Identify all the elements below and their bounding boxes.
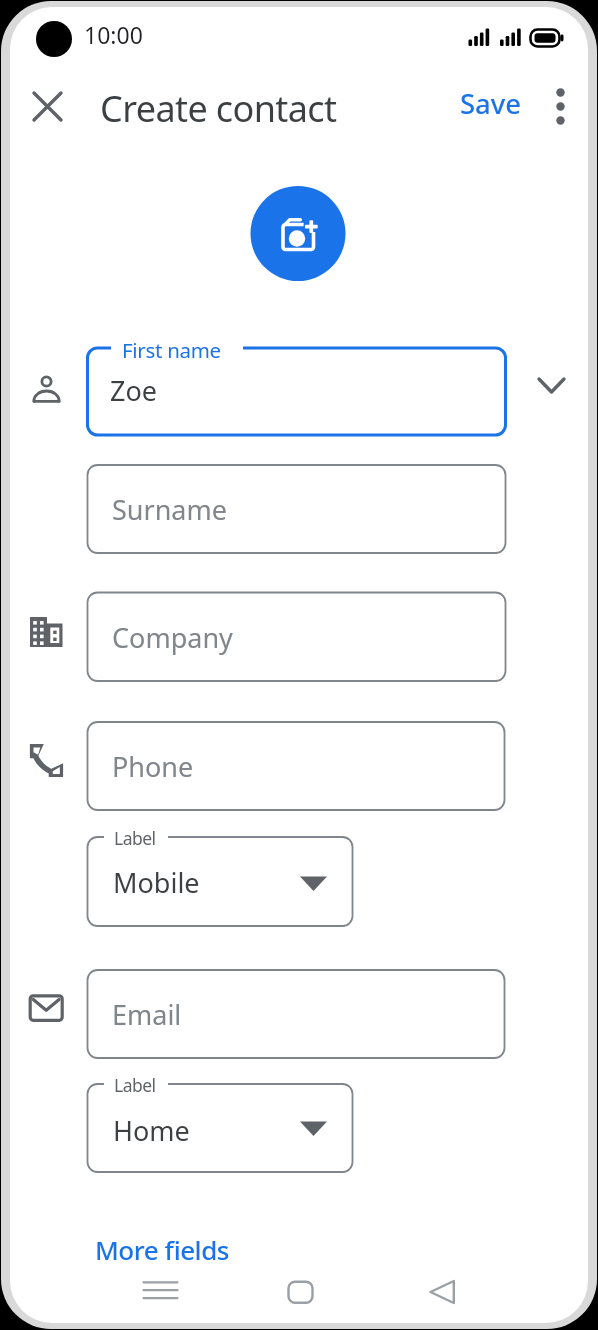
button[interactable]: [87, 970, 504, 1058]
button[interactable]: [542, 86, 579, 127]
staticText: Create contact: [100, 84, 337, 133]
staticText: Label: [114, 826, 156, 850]
staticText: Zoe: [110, 372, 158, 409]
staticText: Surname: [112, 491, 227, 528]
staticText: Label: [114, 1073, 156, 1097]
staticText: 10:00: [84, 19, 143, 50]
staticText: First name: [122, 336, 221, 364]
staticText: Email: [112, 996, 182, 1033]
button[interactable]: [130, 1270, 190, 1315]
button[interactable]: [87, 348, 505, 435]
staticText: Mobile: [113, 864, 200, 901]
staticText: Company: [112, 619, 233, 656]
button[interactable]: [27, 86, 67, 126]
staticText: Phone: [112, 748, 194, 785]
button[interactable]: [412, 1270, 472, 1315]
button[interactable]: [87, 722, 504, 810]
button[interactable]: [270, 1270, 330, 1315]
button[interactable]: [531, 366, 571, 406]
button[interactable]: [87, 837, 352, 926]
button[interactable]: [250, 186, 346, 282]
button[interactable]: [87, 1084, 352, 1172]
button[interactable]: Save: [460, 85, 522, 122]
button[interactable]: [87, 592, 505, 681]
button[interactable]: [87, 465, 505, 553]
button[interactable]: More fields: [95, 1232, 229, 1267]
staticText: Home: [113, 1112, 190, 1149]
